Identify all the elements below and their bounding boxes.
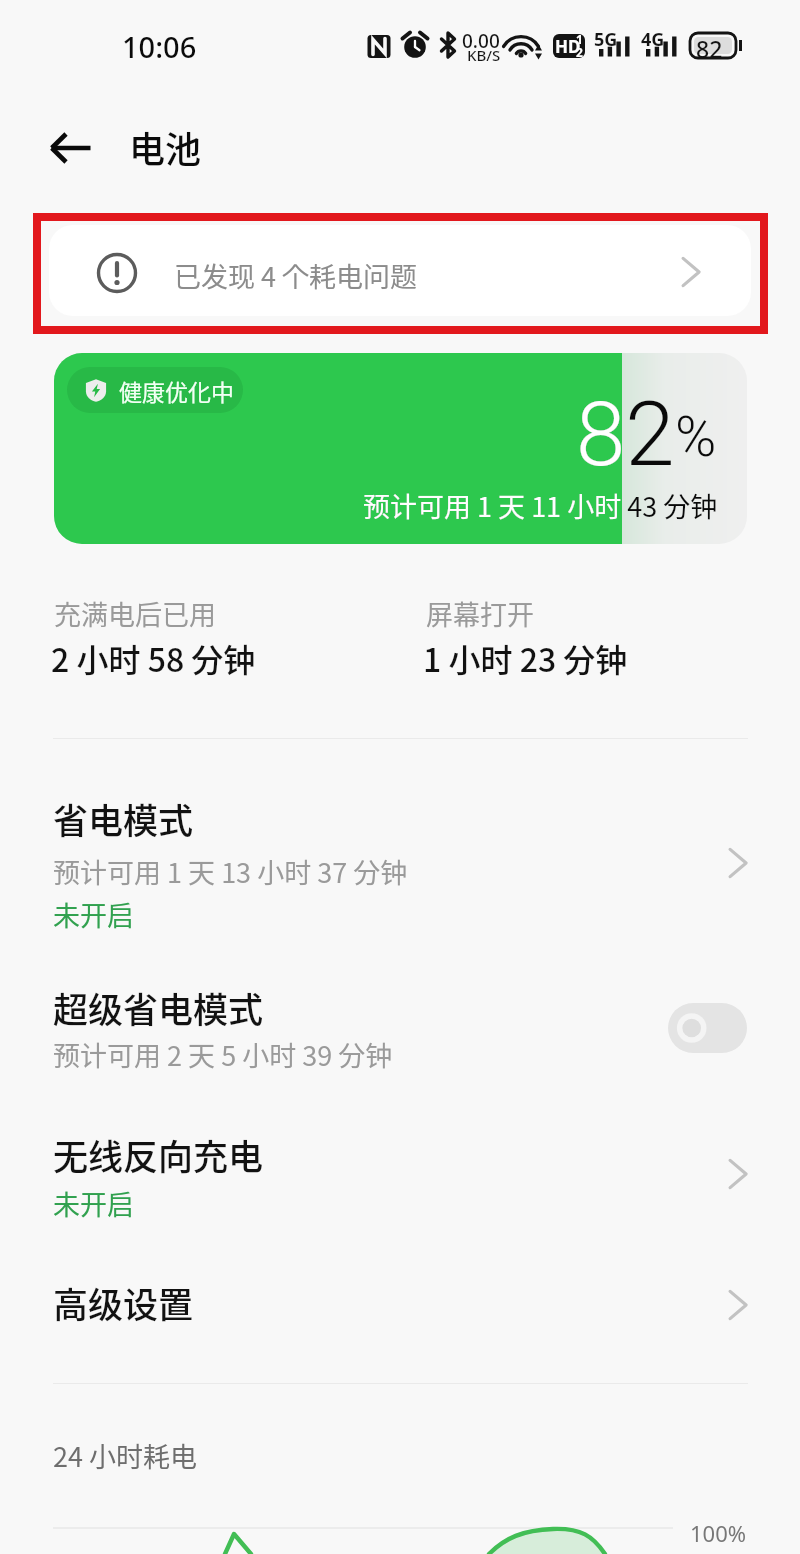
staticText: 10:06: [122, 27, 197, 66]
staticText: KB/S: [467, 45, 501, 65]
button[interactable]: Back: [36, 116, 100, 180]
staticText: 省电模式: [53, 793, 194, 844]
staticText: 充满电后已用: [54, 594, 216, 633]
staticText: 2 小时 58 分钟: [51, 635, 256, 681]
staticText: 0.00: [462, 28, 500, 54]
button[interactable]: 已发现 4 个耗电问题: [49, 225, 751, 316]
staticText: HD: [555, 35, 581, 58]
staticText: 1 小时 23 分钟: [423, 635, 628, 681]
button[interactable]: 健康优化中: [54, 353, 747, 544]
staticText: 超级省电模式: [53, 982, 264, 1033]
staticText: 无线反向充电: [53, 1129, 264, 1180]
staticText: 预计可用 1 天 11 小时 43 分钟: [363, 486, 718, 525]
staticText: 预计可用 1 天 11 小时 43 分钟: [363, 486, 718, 525]
staticText: 82: [576, 382, 675, 486]
staticText: 2: [576, 44, 583, 60]
staticText: 高级设置: [53, 1277, 194, 1328]
staticText: 预计可用 2 天 5 小时 39 分钟: [53, 1035, 393, 1074]
button[interactable]: [0, 955, 800, 1095]
staticText: 24 小时耗电: [53, 1436, 198, 1475]
staticText: 电池: [129, 121, 202, 173]
staticText: 预计可用 1 天 13 小时 37 分钟: [53, 852, 408, 891]
staticText: %: [675, 404, 717, 470]
staticText: 健康优化中: [119, 374, 234, 407]
staticText: 已发现 4 个耗电问题: [174, 256, 418, 295]
button[interactable]: [0, 1258, 800, 1368]
staticText: 5G: [594, 27, 618, 52]
button[interactable]: Toggle super power saving: [668, 1003, 747, 1053]
button[interactable]: [0, 766, 800, 946]
staticText: 未开启: [53, 895, 134, 934]
button[interactable]: [0, 1110, 800, 1240]
staticText: 100%: [690, 1518, 747, 1548]
staticText: %: [675, 404, 717, 470]
staticText: 82: [576, 382, 675, 486]
staticText: 1: [576, 31, 583, 47]
staticText: 82: [696, 33, 723, 64]
staticText: 未开启: [53, 1184, 134, 1223]
staticText: 屏幕打开: [426, 594, 534, 633]
staticText: 4G: [641, 27, 665, 52]
